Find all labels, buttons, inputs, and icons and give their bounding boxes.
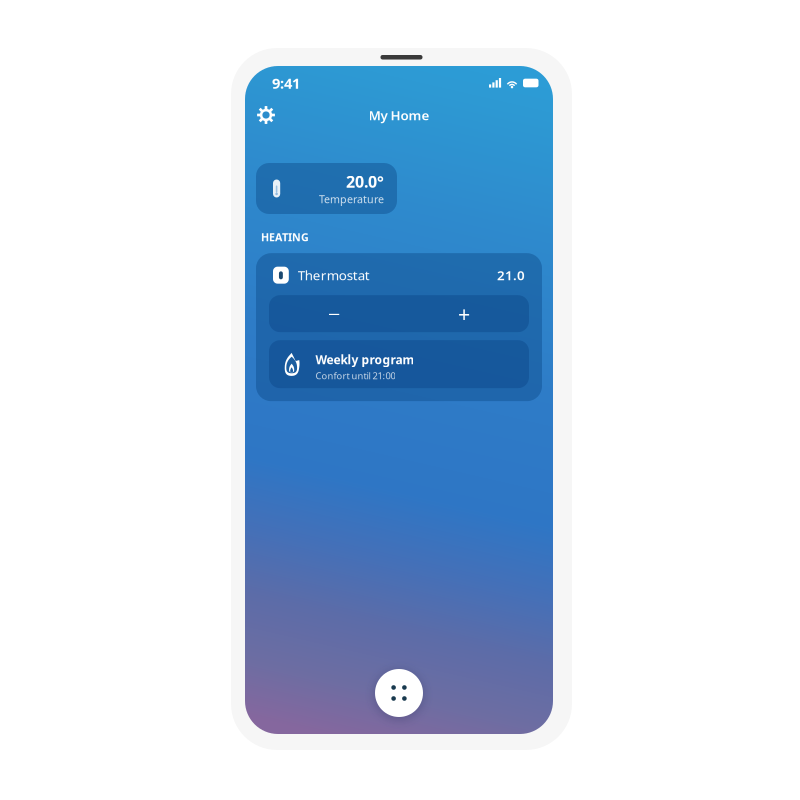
button[interactable]: Increase temperature	[399, 295, 529, 332]
staticText: −	[327, 299, 340, 329]
button[interactable]: Home	[375, 669, 423, 717]
button[interactable]: Weekly program	[269, 340, 529, 388]
staticText: +	[458, 299, 470, 328]
staticText: Thermostat	[298, 266, 370, 284]
staticText: Temperature	[319, 192, 384, 206]
staticText: 20.0°	[346, 171, 384, 192]
staticText: My Home	[368, 106, 429, 124]
staticText: 9:41	[272, 73, 300, 93]
staticText: 21.0	[497, 266, 525, 284]
staticText: Weekly program	[315, 351, 414, 367]
staticText: Confort until 21:00	[315, 369, 395, 382]
button[interactable]: Thermostat	[269, 263, 529, 287]
button[interactable]: Settings	[251, 100, 281, 130]
button[interactable]: Decrease temperature	[269, 295, 399, 332]
staticText: HEATING	[261, 230, 309, 244]
